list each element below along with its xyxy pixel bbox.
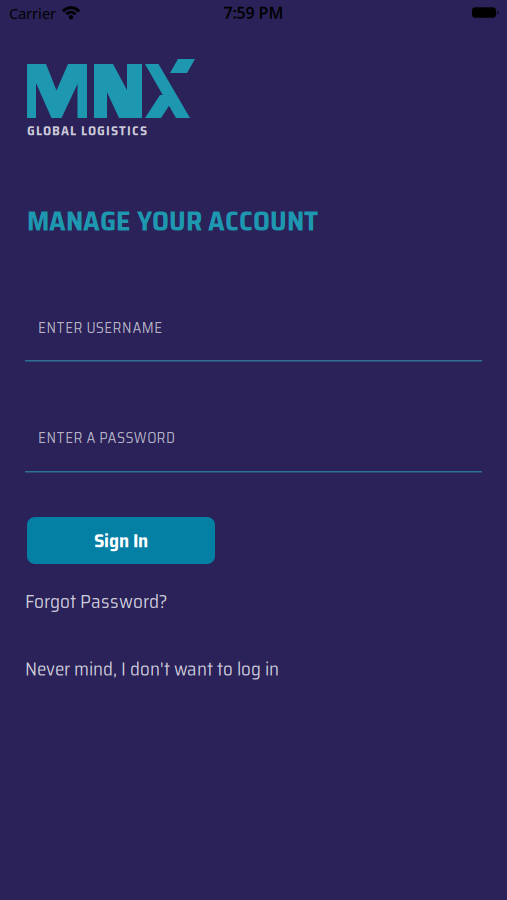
staticText: Forgot Password? [25,586,167,616]
staticText: Never mind, I don't want to log in [25,654,279,684]
staticText: Carrier [9,3,56,23]
staticText: Sign In [94,525,148,556]
button[interactable]: Sign In [27,517,215,564]
button[interactable]: ENTER A PASSWORD [25,426,482,473]
staticText: GLOBAL LOGISTICS [27,120,147,141]
staticText: ENTER A PASSWORD [38,426,175,450]
button[interactable]: Never mind, I don't want to log in [25,654,279,684]
staticText: MANAGE YOUR ACCOUNT [27,199,318,243]
staticText: 7:59 PM [223,2,283,23]
button[interactable]: Forgot Password? [25,586,167,616]
staticText: ENTER USERNAME [38,316,162,340]
button[interactable]: ENTER USERNAME [25,316,482,362]
